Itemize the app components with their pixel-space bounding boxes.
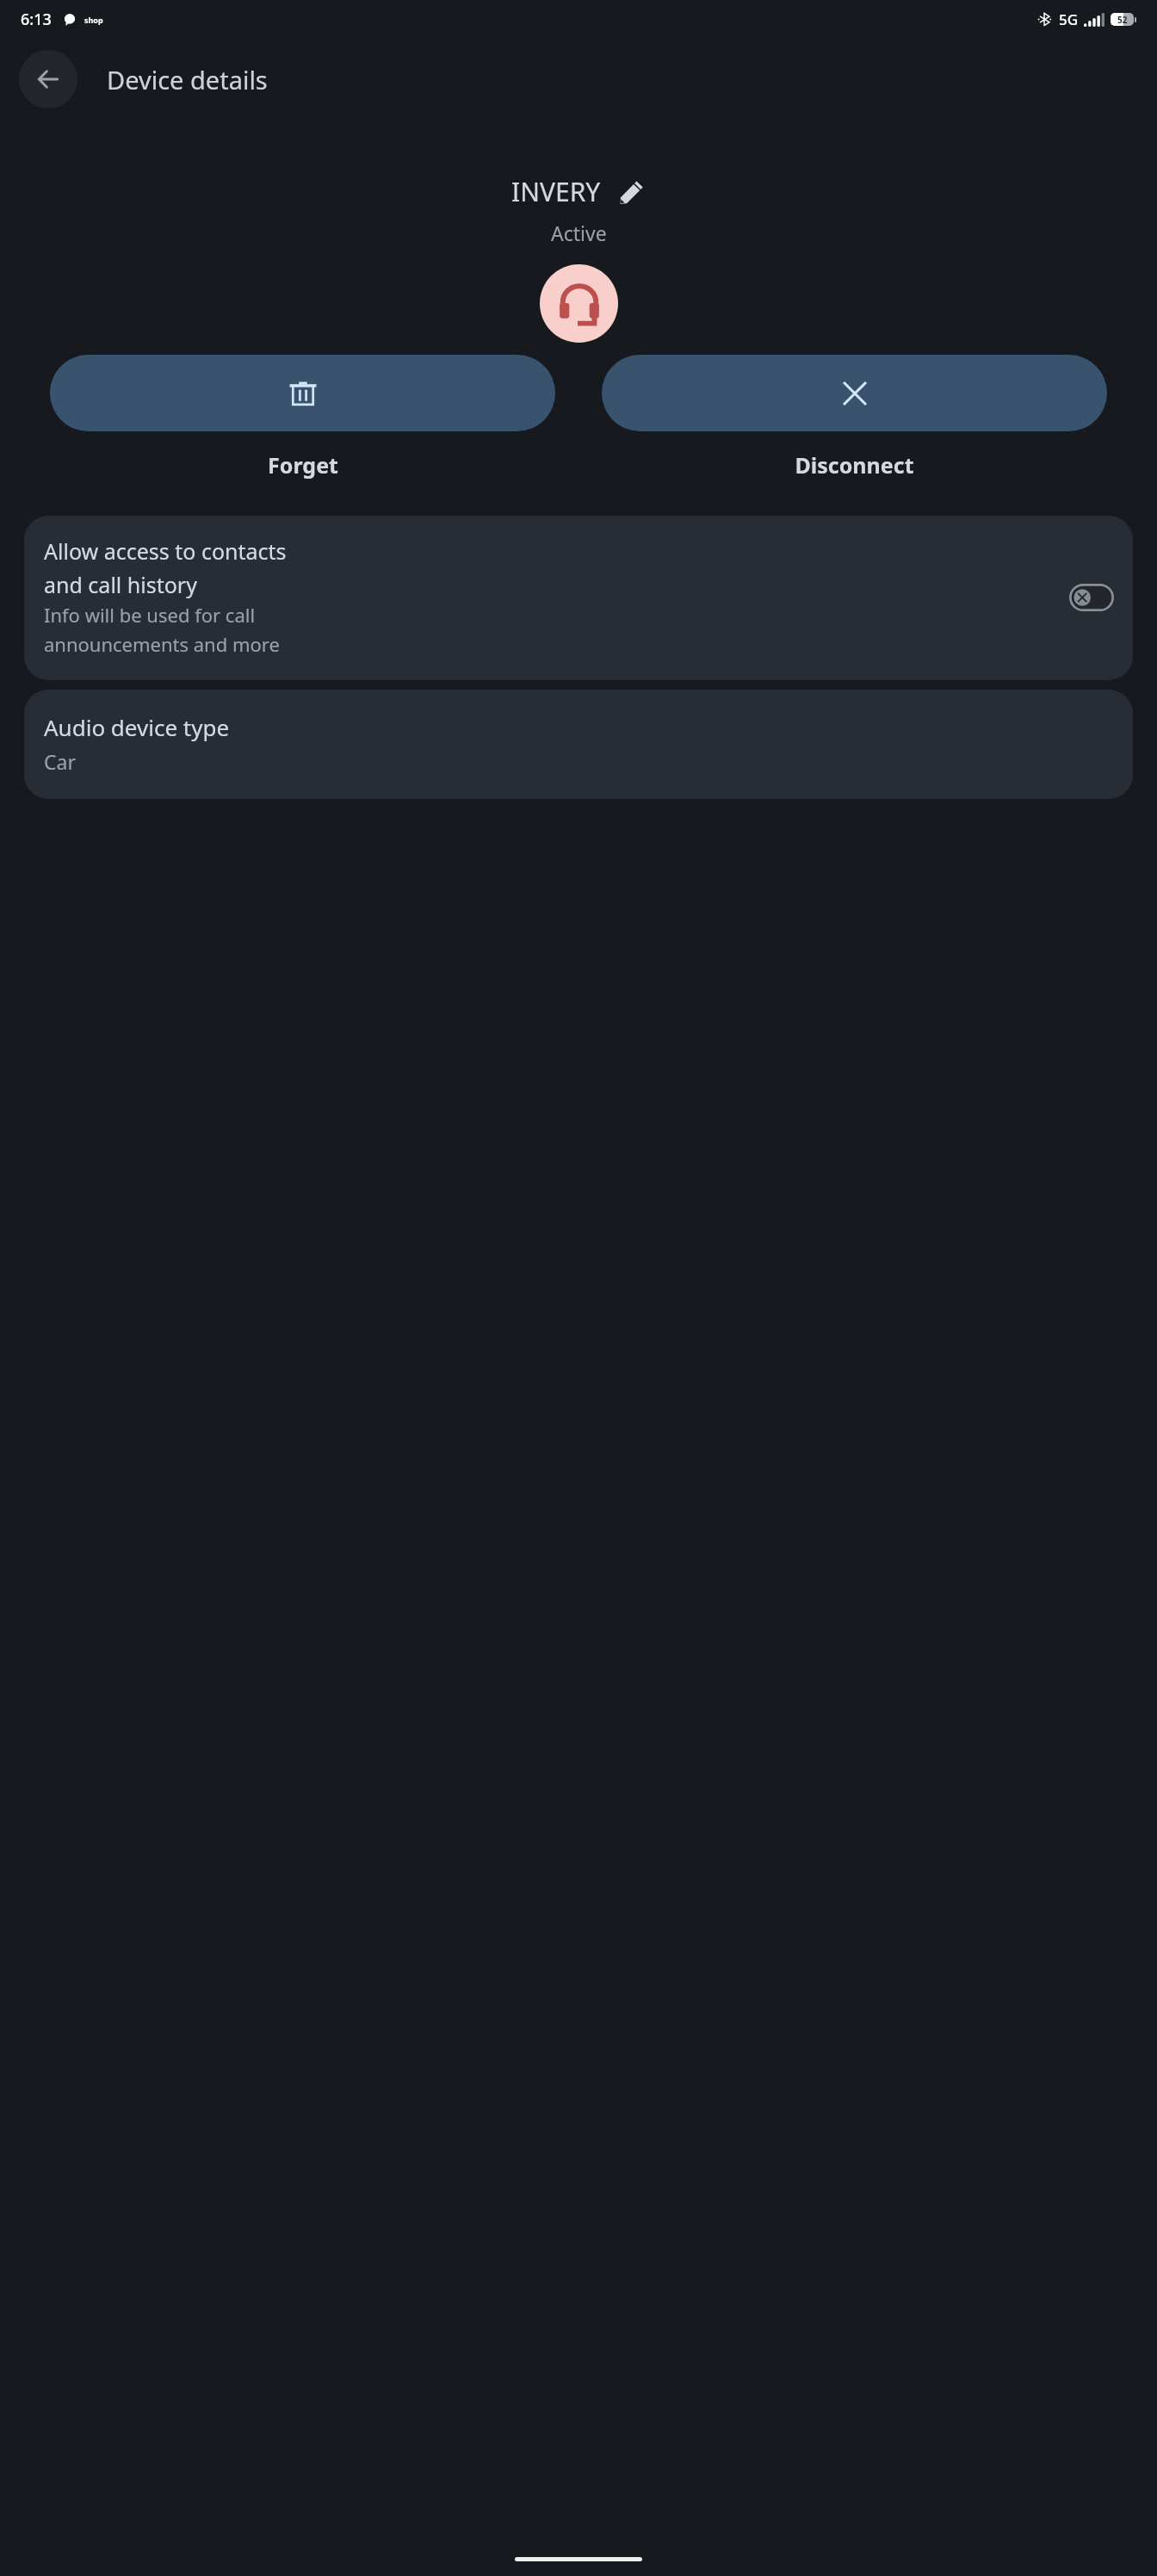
button[interactable]: Back — [19, 50, 77, 108]
button[interactable]: Audio device type — [24, 690, 1133, 799]
button[interactable]: Forget — [50, 355, 555, 480]
staticText: Car — [44, 748, 76, 775]
button[interactable]: Disconnect — [602, 355, 1107, 480]
staticText: Audio device type — [44, 712, 230, 742]
staticText: Forget — [268, 450, 338, 480]
button[interactable]: Allow access to contacts and call histor… — [24, 516, 1133, 680]
staticText: Active — [551, 220, 607, 246]
staticText: 6:13 — [21, 9, 52, 30]
button[interactable]: Rename device — [616, 177, 646, 207]
staticText: Device details — [107, 63, 268, 96]
staticText: shop — [84, 15, 103, 25]
staticText: 5G — [1059, 9, 1079, 29]
staticText: Info will be used for call announcements… — [44, 602, 280, 658]
staticText: Allow access to contacts and call histor… — [44, 536, 287, 599]
staticText: INVERY — [511, 174, 601, 209]
staticText: 52 — [1117, 14, 1128, 26]
button[interactable]: Allow access to contacts and call histor… — [1069, 584, 1114, 611]
staticText: Disconnect — [795, 450, 914, 480]
